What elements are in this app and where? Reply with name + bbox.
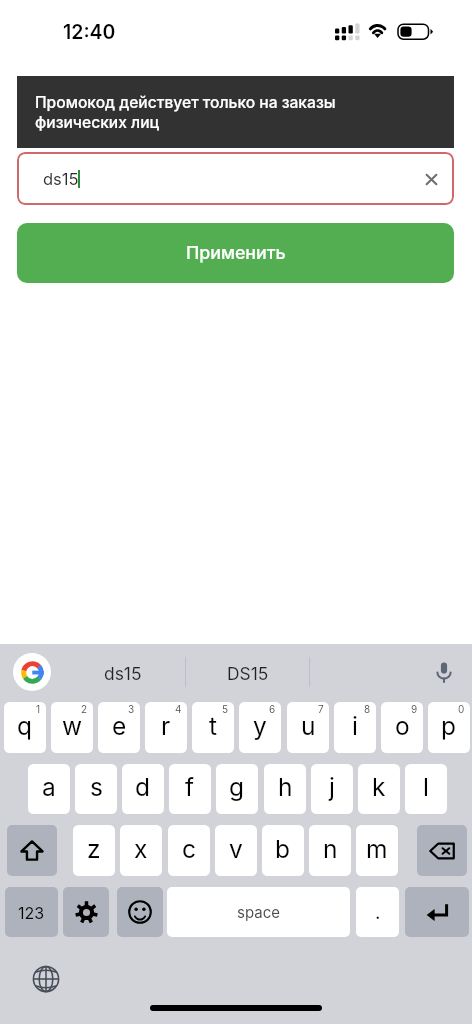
button[interactable]: s: [75, 764, 117, 814]
button[interactable]: n: [309, 825, 351, 876]
staticText: m: [366, 834, 388, 864]
staticText: o: [395, 711, 410, 741]
staticText: q: [17, 711, 33, 741]
button[interactable]: z: [73, 825, 115, 876]
staticText: n: [323, 834, 338, 864]
staticText: c: [182, 834, 196, 864]
staticText: y: [253, 711, 267, 741]
button[interactable]: k: [358, 764, 400, 814]
staticText: 0: [458, 703, 465, 715]
staticText: Промокод действует только на заказы физи…: [35, 93, 336, 132]
button[interactable]: o: [381, 702, 423, 753]
staticText: 8: [364, 703, 371, 715]
button[interactable]: q: [4, 702, 46, 753]
button[interactable]: y: [239, 702, 281, 753]
button[interactable]: space: [167, 887, 350, 937]
button[interactable]: t: [192, 702, 234, 753]
staticText: g: [229, 772, 245, 802]
staticText: h: [278, 772, 293, 802]
button[interactable]: c: [168, 825, 210, 876]
button[interactable]: h: [264, 764, 306, 814]
staticText: e: [112, 711, 127, 741]
staticText: 5: [222, 703, 229, 715]
staticText: k: [372, 772, 386, 802]
button[interactable]: DS15: [186, 644, 310, 702]
staticText: z: [87, 834, 101, 864]
staticText: b: [275, 834, 291, 864]
button[interactable]: a: [28, 764, 70, 814]
button[interactable]: .: [356, 887, 399, 937]
staticText: r: [161, 711, 171, 741]
staticText: .: [375, 901, 381, 924]
button[interactable]: Keyboard settings: [63, 887, 109, 937]
staticText: p: [441, 711, 457, 741]
button[interactable]: w: [51, 702, 93, 753]
button[interactable]: x: [120, 825, 162, 876]
button[interactable]: d: [122, 764, 164, 814]
button[interactable]: Backspace: [417, 825, 467, 876]
staticText: 3: [128, 703, 135, 715]
button[interactable]: Clear text: [417, 165, 445, 193]
button[interactable]: Emoji: [117, 887, 163, 937]
button[interactable]: e: [98, 702, 140, 753]
button[interactable]: 123: [5, 887, 58, 937]
button[interactable]: p: [428, 702, 470, 753]
button[interactable]: b: [262, 825, 304, 876]
button[interactable]: Применить: [17, 223, 454, 283]
staticText: 7: [318, 703, 324, 715]
staticText: 12:40: [63, 20, 116, 44]
button[interactable]: Change language: [32, 965, 60, 993]
staticText: l: [423, 772, 429, 802]
staticText: 1: [36, 703, 41, 715]
staticText: f: [185, 772, 195, 802]
staticText: 6: [269, 703, 276, 715]
staticText: DS15: [227, 663, 269, 684]
staticText: j: [329, 772, 335, 802]
button[interactable]: v: [215, 825, 257, 876]
button[interactable]: g: [216, 764, 258, 814]
staticText: space: [237, 903, 280, 921]
button[interactable]: ds15: [17, 152, 454, 205]
staticText: w: [62, 711, 83, 741]
button[interactable]: Enter: [405, 887, 469, 937]
button[interactable]: r: [145, 702, 187, 753]
staticText: ds15: [43, 169, 79, 189]
staticText: u: [301, 711, 316, 741]
staticText: 2: [81, 703, 88, 715]
staticText: 9: [411, 703, 418, 715]
staticText: t: [209, 711, 218, 741]
button[interactable]: m: [356, 825, 398, 876]
button[interactable]: ds15: [61, 644, 185, 702]
button[interactable]: Google: [13, 653, 51, 691]
button[interactable]: f: [169, 764, 211, 814]
staticText: d: [135, 772, 151, 802]
staticText: Применить: [186, 242, 286, 264]
staticText: a: [42, 772, 56, 802]
staticText: 4: [175, 703, 182, 715]
staticText: ds15: [104, 663, 142, 684]
staticText: x: [134, 834, 148, 864]
staticText: i: [352, 711, 358, 741]
button[interactable]: l: [405, 764, 447, 814]
button[interactable]: u: [287, 702, 329, 753]
staticText: s: [90, 772, 103, 802]
button[interactable]: j: [311, 764, 353, 814]
staticText: 123: [18, 903, 45, 922]
button[interactable]: Shift: [7, 825, 57, 876]
staticText: v: [229, 834, 243, 864]
button[interactable]: Voice input: [429, 657, 459, 687]
button[interactable]: i: [334, 702, 376, 753]
